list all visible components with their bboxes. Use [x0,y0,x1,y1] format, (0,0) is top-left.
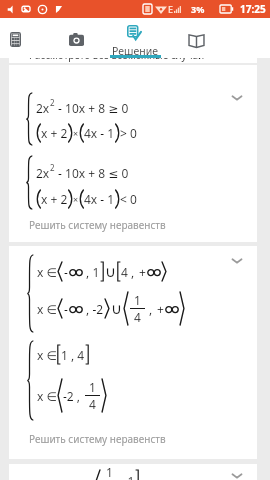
staticText: × [73,193,79,205]
staticText: x ∈ [37,264,57,280]
staticText: x ∈ [37,347,57,363]
staticText: x ∈ [37,388,57,404]
staticText: + [157,301,164,317]
staticText: , 1 [118,473,135,480]
staticText: Решение [112,44,158,58]
button[interactable]: Dictionary [166,18,226,58]
staticText: - [64,301,68,317]
staticText: 1 [134,292,141,308]
staticText: , 1 [83,264,100,280]
button[interactable]: Expand step [9,246,257,459]
staticText: 4x - 1 [84,125,115,141]
staticText: > 0 [120,125,137,141]
staticText: 3% [191,3,205,15]
staticText: 17:25 [240,2,266,16]
staticText: 2 [50,162,55,173]
staticText: - [64,264,68,280]
staticText: 2 [50,97,55,108]
staticText: Рассмотрето все возможные случаи [29,48,205,62]
staticText: x ∈ [37,301,57,317]
staticText: 4 [89,396,96,412]
staticText: - 10x + 8 ≥ 0 [55,100,129,116]
button[interactable]: Решение [105,18,165,58]
staticText: , [146,301,156,317]
button[interactable]: Camera [46,18,106,58]
other: Expand step [231,94,243,102]
staticText: 4 , [121,264,138,280]
staticText: < 0 [120,191,137,207]
staticText: 4 [134,309,141,325]
staticText: Решить систему неравенств [29,432,166,446]
staticText: 1 [106,464,113,480]
staticText: ∪ [105,263,116,280]
staticText: , -2 [83,301,104,317]
staticText: 4x - 1 [84,191,115,207]
staticText: 2x [36,100,50,116]
staticText: × [73,127,79,139]
staticText: 1 [89,379,96,395]
other: Expand step [231,257,243,265]
button[interactable]: Рассмотрето все возможные случаи [9,30,257,63]
staticText: ∪ [111,300,122,317]
staticText: - 10x + 8 ≤ 0 [55,165,129,181]
staticText: -2 , [63,388,84,404]
button[interactable]: Expand step [9,65,257,242]
staticText: Решить систему неравенств [29,218,166,232]
other: Expand step [231,472,243,480]
staticText: E [168,3,174,15]
staticText: + [139,264,146,280]
staticText: 2x [36,165,50,181]
staticText: x + 2 [41,125,68,141]
staticText: 1 , 4 [61,347,85,363]
staticText: x + 2 [41,191,68,207]
button[interactable]: Calculator [0,18,31,58]
button[interactable]: Expand step [9,464,257,480]
